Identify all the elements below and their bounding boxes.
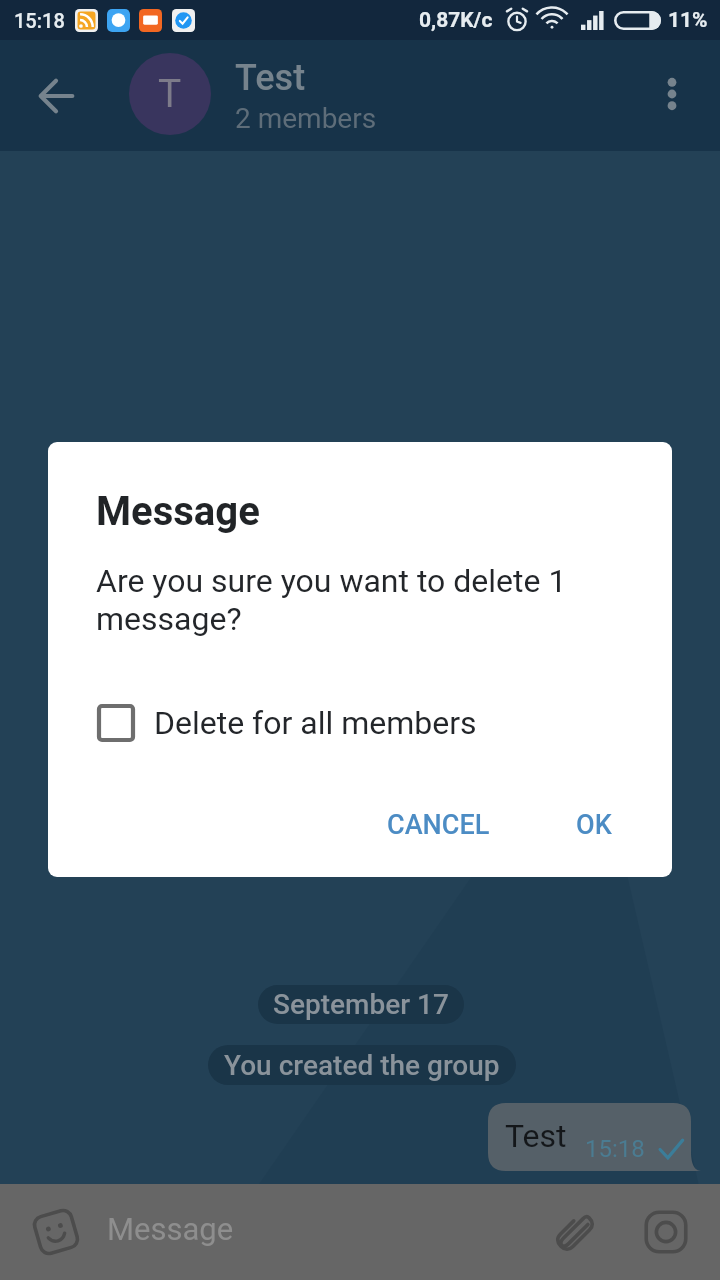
- staticText: T: [158, 71, 182, 117]
- staticText: Test: [235, 57, 306, 99]
- staticText: Are you sure you want to delete 1 messag…: [96, 562, 628, 638]
- staticText: You created the group: [224, 1049, 500, 1082]
- button[interactable]: CANCEL: [371, 795, 506, 855]
- staticText: 0,87K/c: [419, 8, 493, 33]
- staticText: 2 members: [235, 102, 377, 135]
- staticText: September 17: [273, 988, 449, 1021]
- button[interactable]: Group avatar: [129, 53, 211, 135]
- staticText: Message: [107, 1211, 234, 1247]
- button[interactable]: September 17: [258, 985, 464, 1024]
- button[interactable]: OK: [560, 795, 628, 855]
- staticText: Delete for all members: [154, 704, 477, 742]
- button[interactable]: Delete for all members: [96, 704, 477, 742]
- staticText: 11%: [668, 8, 708, 33]
- staticText: 15:18: [585, 1135, 645, 1163]
- staticText: CANCEL: [387, 809, 490, 841]
- button[interactable]: You created the group: [208, 1045, 516, 1085]
- staticText: Test: [505, 1117, 567, 1155]
- staticText: Message: [96, 488, 260, 535]
- button[interactable]: Emoji: [12, 1184, 100, 1280]
- button[interactable]: More options: [636, 58, 708, 130]
- button[interactable]: Camera: [622, 1184, 710, 1280]
- staticText: 15:18: [14, 9, 65, 32]
- staticText: OK: [576, 809, 612, 841]
- button[interactable]: Test: [488, 1103, 702, 1171]
- button[interactable]: Attach: [531, 1184, 619, 1280]
- button[interactable]: Back: [20, 60, 92, 132]
